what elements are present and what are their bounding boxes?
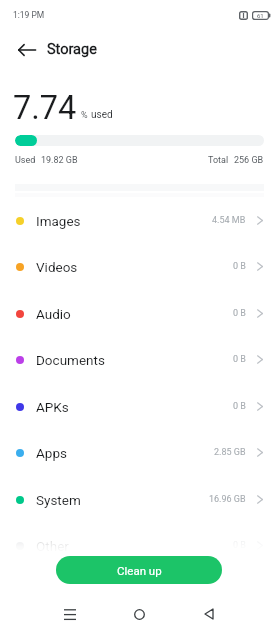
button[interactable]: Recent apps [53,598,86,630]
staticText: 2.85 GB [214,447,246,458]
staticText: APKs [36,399,69,415]
staticText: 0 B [233,540,246,551]
staticText: Used [15,155,36,166]
staticText: 61 [257,12,264,19]
staticText: System [36,492,81,508]
button[interactable]: Documents [0,336,279,383]
button[interactable]: Other [0,522,279,569]
staticText: Other [36,538,69,554]
button[interactable]: Back [192,598,225,630]
button[interactable]: Videos [0,243,279,290]
staticText: 16.96 GB [209,494,246,505]
staticText: Documents [36,352,105,368]
staticText: 0 B [233,308,246,319]
staticText: 1:19 PM [13,10,45,20]
staticText: Storage [47,41,97,58]
button[interactable]: Apps [0,429,279,476]
staticText: % [81,110,88,121]
button[interactable]: Audio [0,290,279,337]
staticText: Videos [36,259,78,275]
staticText: 256 GB [234,155,264,166]
staticText: used [91,109,113,121]
staticText: Images [36,213,81,229]
staticText: 0 B [233,261,246,272]
staticText: Apps [36,445,67,461]
staticText: 7.74 [13,89,77,127]
staticText: 19.82 GB [41,155,78,166]
staticText: Total [208,155,229,166]
staticText: 0 B [233,354,246,365]
button[interactable]: Home [123,598,156,630]
button[interactable]: Back [10,33,43,66]
button[interactable]: System [0,476,279,523]
staticText: 0 B [233,401,246,412]
staticText: Audio [36,306,71,322]
button[interactable]: APKs [0,383,279,430]
button[interactable]: Clean up [56,556,222,584]
staticText: 4.54 MB [212,215,246,226]
button[interactable]: Images [0,197,279,244]
staticText: Clean up [117,564,162,577]
